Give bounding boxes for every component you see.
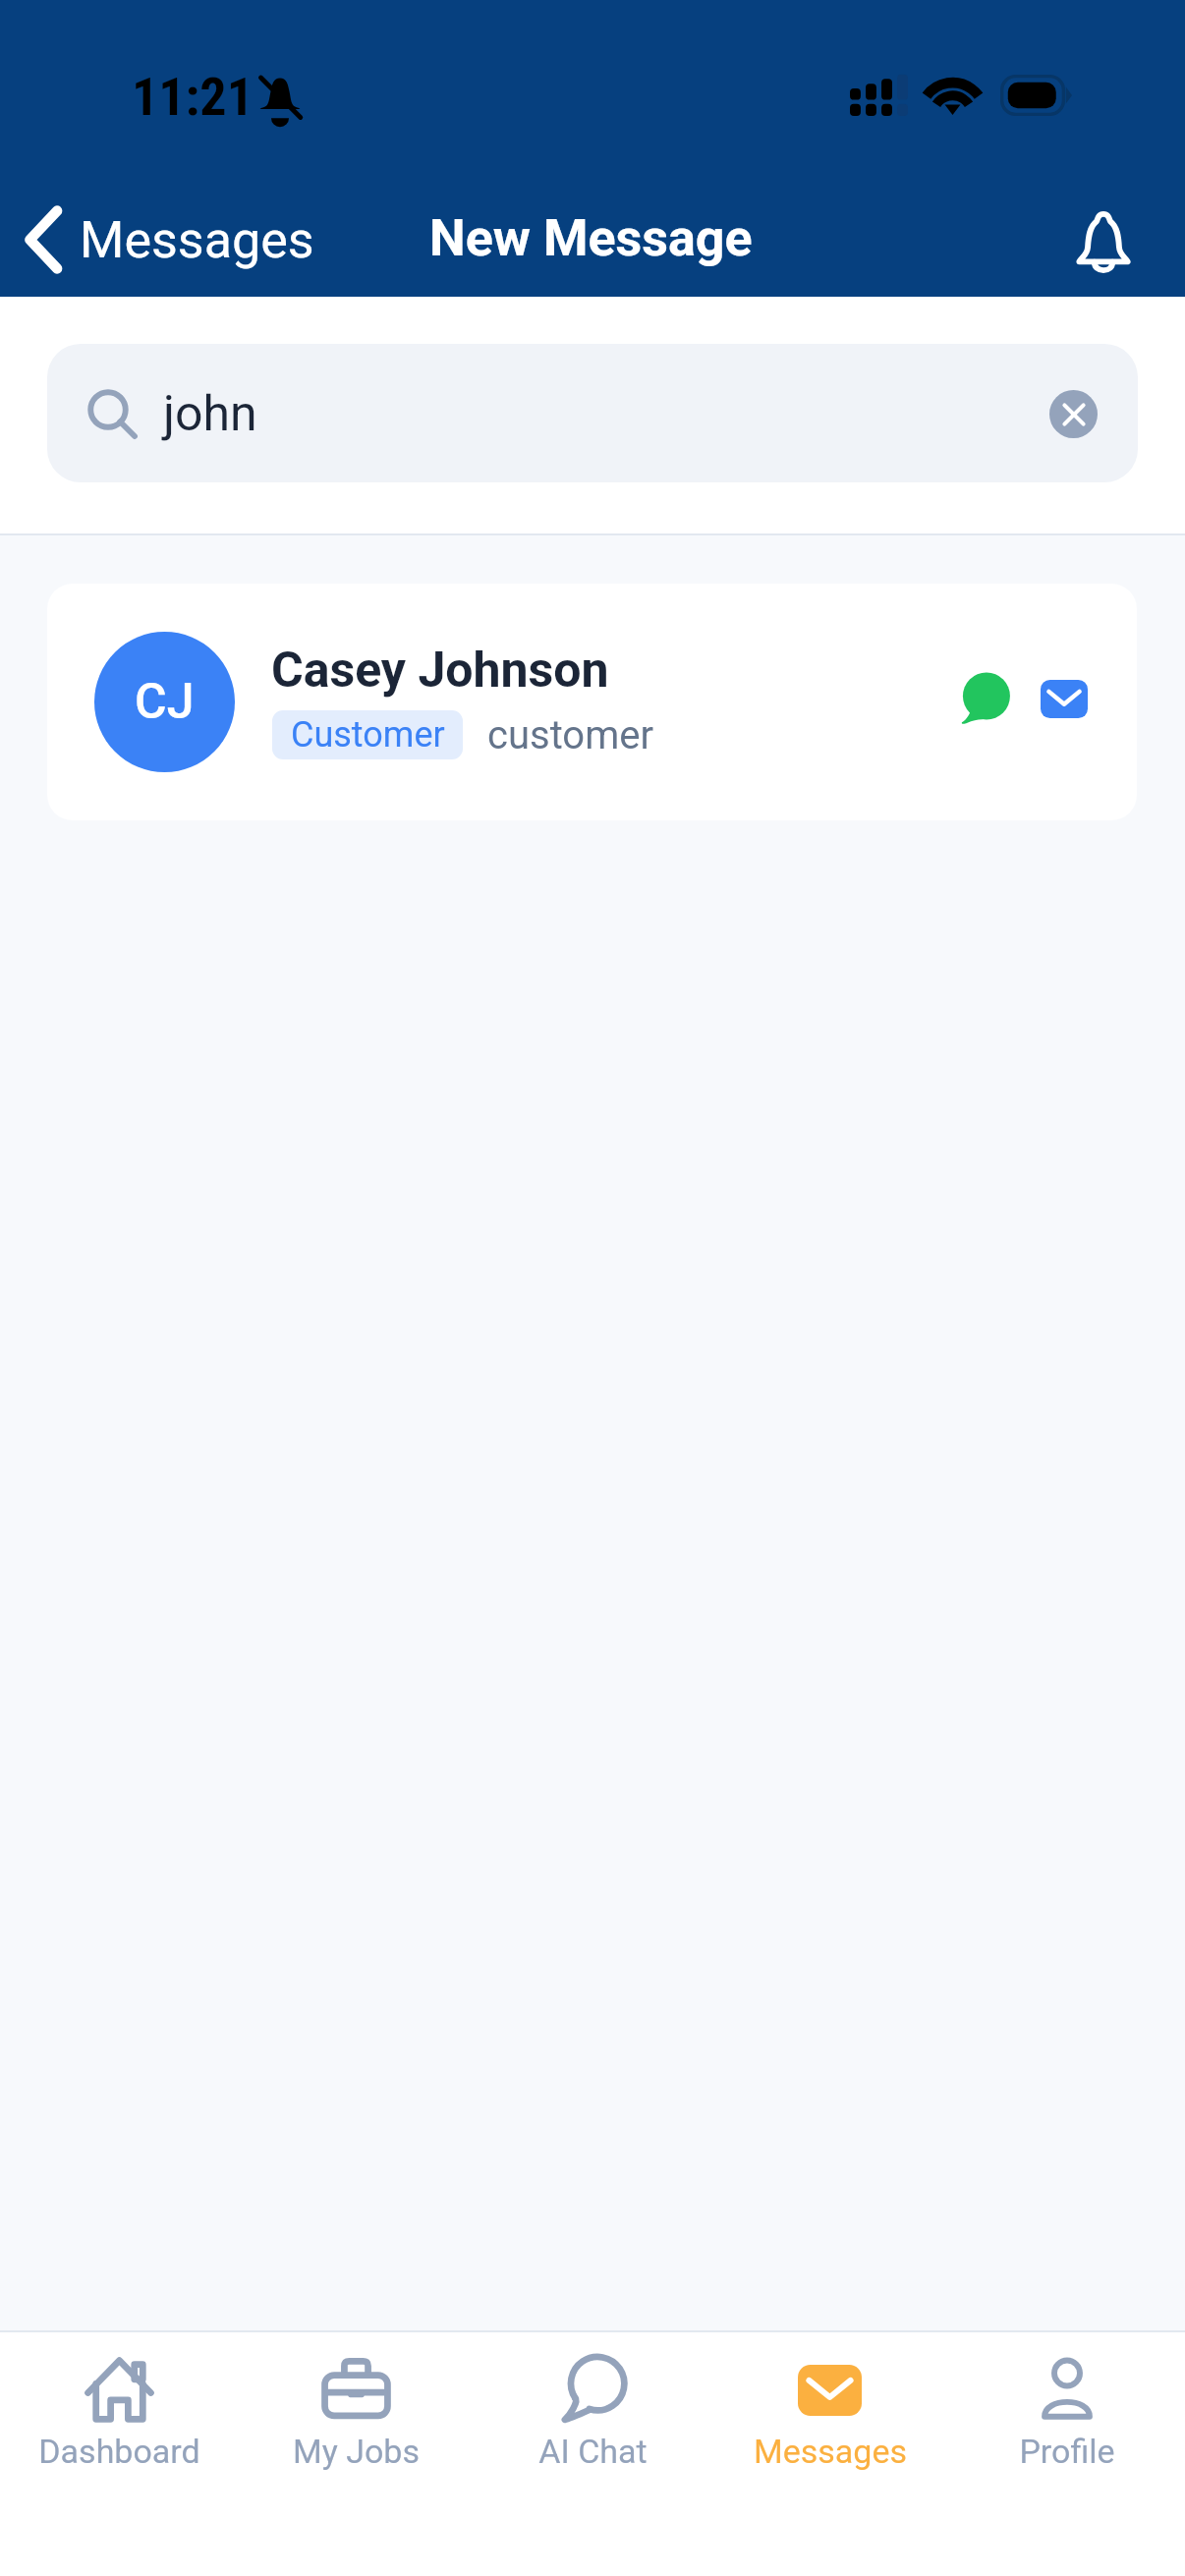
staticText: Customer bbox=[291, 714, 445, 756]
button[interactable]: Send message bbox=[943, 658, 1026, 741]
staticText: john bbox=[163, 385, 257, 443]
button[interactable]: Messages bbox=[0, 188, 338, 286]
staticText: My Jobs bbox=[293, 2432, 420, 2471]
button[interactable]: john bbox=[47, 344, 1138, 482]
staticText: Dashboard bbox=[38, 2432, 200, 2471]
staticText: customer bbox=[487, 712, 653, 758]
button[interactable]: Profile bbox=[948, 2332, 1185, 2576]
button[interactable]: CJ bbox=[47, 584, 1137, 820]
staticText: New Message bbox=[429, 208, 753, 268]
button[interactable]: Send email bbox=[1023, 657, 1105, 740]
staticText: 11:21 bbox=[132, 66, 254, 128]
button[interactable]: Clear search bbox=[1049, 390, 1098, 438]
staticText: AI Chat bbox=[538, 2432, 648, 2471]
staticText: Messages bbox=[754, 2432, 907, 2471]
button[interactable]: My Jobs bbox=[238, 2332, 475, 2576]
button[interactable]: Dashboard bbox=[0, 2332, 238, 2576]
staticText: Casey Johnson bbox=[271, 642, 609, 700]
button[interactable]: Notifications bbox=[1055, 196, 1152, 287]
staticText: CJ bbox=[135, 673, 195, 731]
button[interactable]: Messages bbox=[711, 2332, 948, 2576]
staticText: Profile bbox=[1019, 2432, 1115, 2471]
button[interactable]: AI Chat bbox=[475, 2332, 711, 2576]
staticText: Messages bbox=[80, 210, 314, 270]
